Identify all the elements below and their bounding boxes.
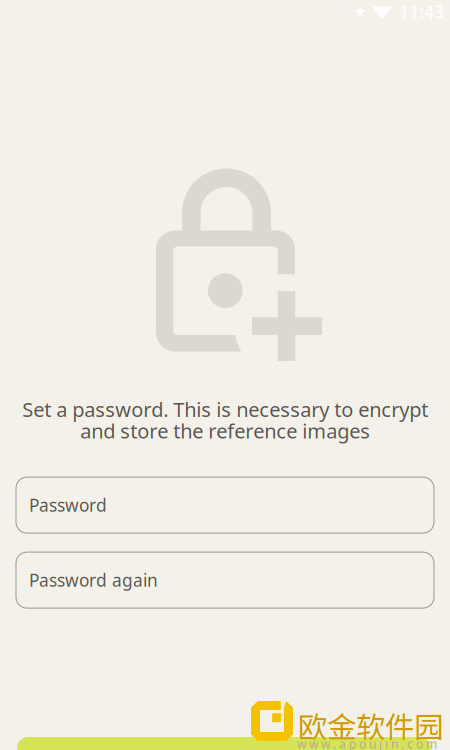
staticText: w w w . a p o u j i n . c o m	[297, 736, 437, 750]
staticText: Password again	[29, 569, 158, 592]
button[interactable]: Password	[16, 477, 434, 533]
staticText: Password	[29, 494, 107, 517]
staticText: Set a password. This is necessary to enc…	[22, 396, 428, 444]
staticText: 11:43	[399, 0, 444, 23]
staticText: 欧金软件园	[298, 704, 443, 746]
button[interactable]: Password again	[16, 552, 434, 608]
